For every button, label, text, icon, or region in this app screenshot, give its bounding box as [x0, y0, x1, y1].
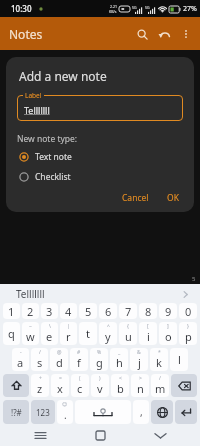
- staticText: d: [56, 355, 63, 370]
- button[interactable]: Undo: [153, 23, 175, 45]
- staticText: z: [37, 381, 43, 396]
- staticText: _: [118, 349, 121, 356]
- staticText: 27%: [183, 4, 197, 14]
- button[interactable]: 5: [79, 303, 97, 319]
- button[interactable]: l: [170, 348, 188, 371]
- staticText: -: [20, 349, 22, 356]
- staticText: <: [119, 375, 122, 382]
- staticText: j: [138, 355, 141, 370]
- staticText: Notes: [9, 26, 43, 42]
- button[interactable]: {: [119, 322, 137, 345]
- button[interactable]: Enter: [175, 400, 197, 424]
- staticText: b: [117, 381, 124, 396]
- button[interactable]: 6: [99, 303, 117, 319]
- staticText: Checklist: [35, 171, 71, 183]
- button[interactable]: t: [79, 322, 97, 345]
- button[interactable]: Checklist: [6, 169, 194, 185]
- staticText: q: [8, 326, 15, 341]
- staticText: 10:30: [11, 3, 32, 14]
- button[interactable]: (: [71, 374, 89, 397]
- staticText: ,: [140, 405, 143, 419]
- button[interactable]: Recents: [20, 424, 60, 446]
- button[interactable]: Symbols: [3, 400, 29, 424]
- button[interactable]: /: [31, 348, 48, 371]
- button[interactable]: 0: [179, 303, 197, 319]
- button[interactable]: 7: [119, 303, 137, 319]
- button[interactable]: Comma: [133, 400, 149, 424]
- button[interactable]: >: [131, 374, 149, 397]
- button[interactable]: ~: [22, 322, 39, 345]
- staticText: n: [137, 381, 144, 396]
- staticText: .: [64, 408, 67, 422]
- button[interactable]: &: [130, 348, 148, 371]
- button[interactable]: =: [51, 374, 69, 397]
- staticText: Text note: [35, 151, 72, 163]
- button[interactable]: [17, 95, 183, 121]
- button[interactable]: OK: [161, 188, 185, 208]
- button[interactable]: -: [12, 348, 29, 371]
- staticText: p: [185, 329, 192, 344]
- staticText: (: [79, 375, 81, 382]
- button[interactable]: 1: [3, 303, 20, 319]
- staticText: m: [155, 381, 166, 396]
- button[interactable]: Numbers: [31, 400, 55, 424]
- staticText: ~: [29, 323, 32, 330]
- button[interactable]: 4: [60, 303, 77, 319]
- staticText: =: [59, 375, 62, 382]
- button[interactable]: \: [41, 322, 58, 345]
- staticText: |: [67, 323, 70, 330]
- button[interactable]: ): [91, 374, 109, 397]
- button[interactable]: 8: [139, 303, 157, 319]
- button[interactable]: Hide keyboard: [140, 424, 180, 446]
- staticText: !?#: [11, 407, 22, 418]
- button[interactable]: ^: [99, 322, 117, 345]
- button[interactable]: |: [60, 322, 77, 345]
- staticText: Cancel: [122, 192, 149, 204]
- button[interactable]: 9: [159, 303, 177, 319]
- button[interactable]: #: [70, 348, 88, 371]
- button[interactable]: Search: [131, 23, 153, 45]
- button[interactable]: More options: [175, 23, 197, 45]
- staticText: c: [77, 381, 83, 396]
- staticText: 4: [65, 304, 72, 319]
- staticText: ☺: [62, 401, 68, 407]
- button[interactable]: q: [3, 322, 20, 345]
- button[interactable]: /: [151, 374, 169, 397]
- button[interactable]: Change language: [151, 400, 173, 424]
- button[interactable]: *: [150, 348, 168, 371]
- staticText: i: [147, 329, 150, 344]
- button[interactable]: _: [110, 348, 128, 371]
- button[interactable]: ]: [159, 322, 177, 345]
- button[interactable]: More suggestions: [177, 286, 193, 302]
- button[interactable]: 3: [41, 303, 58, 319]
- staticText: /: [159, 375, 161, 382]
- button[interactable]: Cancel: [116, 188, 155, 208]
- staticText: k: [156, 355, 162, 370]
- staticText: Label: [25, 91, 42, 100]
- button[interactable]: Backspace: [171, 374, 197, 397]
- button[interactable]: <: [111, 374, 129, 397]
- staticText: t: [86, 326, 90, 341]
- button[interactable]: %: [90, 348, 108, 371]
- staticText: Add a new note: [19, 68, 107, 84]
- button[interactable]: +: [31, 374, 49, 397]
- staticText: w: [26, 329, 35, 344]
- staticText: +: [39, 375, 42, 382]
- staticText: 6: [105, 304, 112, 319]
- button[interactable]: }: [179, 322, 197, 345]
- button[interactable]: Home: [80, 424, 120, 446]
- button[interactable]: Period: [57, 400, 73, 424]
- button[interactable]: 2: [22, 303, 39, 319]
- staticText: *: [158, 349, 161, 356]
- button[interactable]: [: [139, 322, 157, 345]
- button[interactable]: Shift: [3, 374, 29, 397]
- button[interactable]: Telllllll: [0, 285, 45, 303]
- staticText: &: [137, 349, 141, 356]
- staticText: KB/s: [109, 9, 117, 14]
- staticText: OK: [167, 192, 179, 204]
- button[interactable]: @: [50, 348, 68, 371]
- staticText: {: [127, 323, 129, 330]
- button[interactable]: Text note: [6, 149, 194, 165]
- staticText: s: [37, 355, 43, 370]
- button[interactable]: Space: [75, 400, 131, 424]
